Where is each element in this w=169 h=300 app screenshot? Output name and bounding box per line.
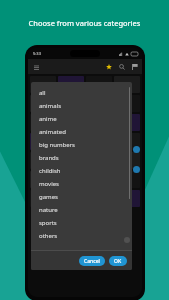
button[interactable]: Add xyxy=(133,146,140,153)
button[interactable] xyxy=(30,171,56,188)
staticText: Cancel xyxy=(84,258,100,265)
button[interactable]: childish xyxy=(39,164,132,177)
button[interactable] xyxy=(30,76,56,93)
button[interactable] xyxy=(30,114,56,131)
button[interactable]: anime xyxy=(39,112,132,125)
button[interactable]: sports xyxy=(39,216,132,229)
button[interactable]: OK xyxy=(109,256,127,266)
button[interactable] xyxy=(58,95,84,112)
staticText: Choose from various categories xyxy=(0,18,169,28)
button[interactable]: Menu xyxy=(31,62,41,72)
button[interactable]: Favorites xyxy=(104,62,114,72)
button[interactable]: animated xyxy=(39,125,132,138)
staticText: sports xyxy=(39,219,57,227)
button[interactable]: Filter xyxy=(133,166,140,173)
staticText: 5:33 xyxy=(33,51,41,56)
button[interactable] xyxy=(30,95,56,112)
button[interactable] xyxy=(114,152,140,169)
staticText: games xyxy=(39,193,58,201)
button[interactable]: games xyxy=(39,190,132,203)
button[interactable]: nature xyxy=(39,203,132,216)
staticText: brands xyxy=(39,154,59,162)
button[interactable] xyxy=(114,133,140,150)
button[interactable]: movies xyxy=(39,177,132,190)
button[interactable] xyxy=(114,95,140,112)
staticText: movies xyxy=(39,180,59,188)
staticText: anime xyxy=(39,115,57,123)
staticText: childish xyxy=(39,167,61,175)
button[interactable] xyxy=(114,190,140,207)
button[interactable]: animals xyxy=(39,99,132,112)
button[interactable] xyxy=(86,76,112,93)
staticText: nature xyxy=(39,206,58,214)
button[interactable]: brands xyxy=(39,151,132,164)
button[interactable] xyxy=(58,114,84,131)
button[interactable]: Scroll handle xyxy=(124,237,130,243)
staticText: OK xyxy=(114,258,122,265)
button[interactable] xyxy=(30,133,56,150)
button[interactable]: big numbers xyxy=(39,138,132,151)
staticText: others xyxy=(39,232,58,240)
button[interactable] xyxy=(58,133,84,150)
button[interactable] xyxy=(58,76,84,93)
button[interactable]: Cancel xyxy=(79,256,105,266)
button[interactable]: all xyxy=(39,86,132,99)
button[interactable] xyxy=(114,114,140,131)
button[interactable] xyxy=(114,76,140,93)
button[interactable] xyxy=(114,171,140,188)
staticText: animated xyxy=(39,128,66,136)
button[interactable]: others xyxy=(39,229,132,242)
button[interactable] xyxy=(58,152,84,169)
staticText: animals xyxy=(39,102,62,110)
button[interactable] xyxy=(58,171,84,188)
staticText: big numbers xyxy=(39,141,75,149)
button[interactable]: Search xyxy=(117,62,127,72)
staticText: all xyxy=(39,89,46,97)
button[interactable]: Flag xyxy=(130,62,140,72)
button[interactable] xyxy=(30,152,56,169)
button[interactable] xyxy=(30,190,56,207)
